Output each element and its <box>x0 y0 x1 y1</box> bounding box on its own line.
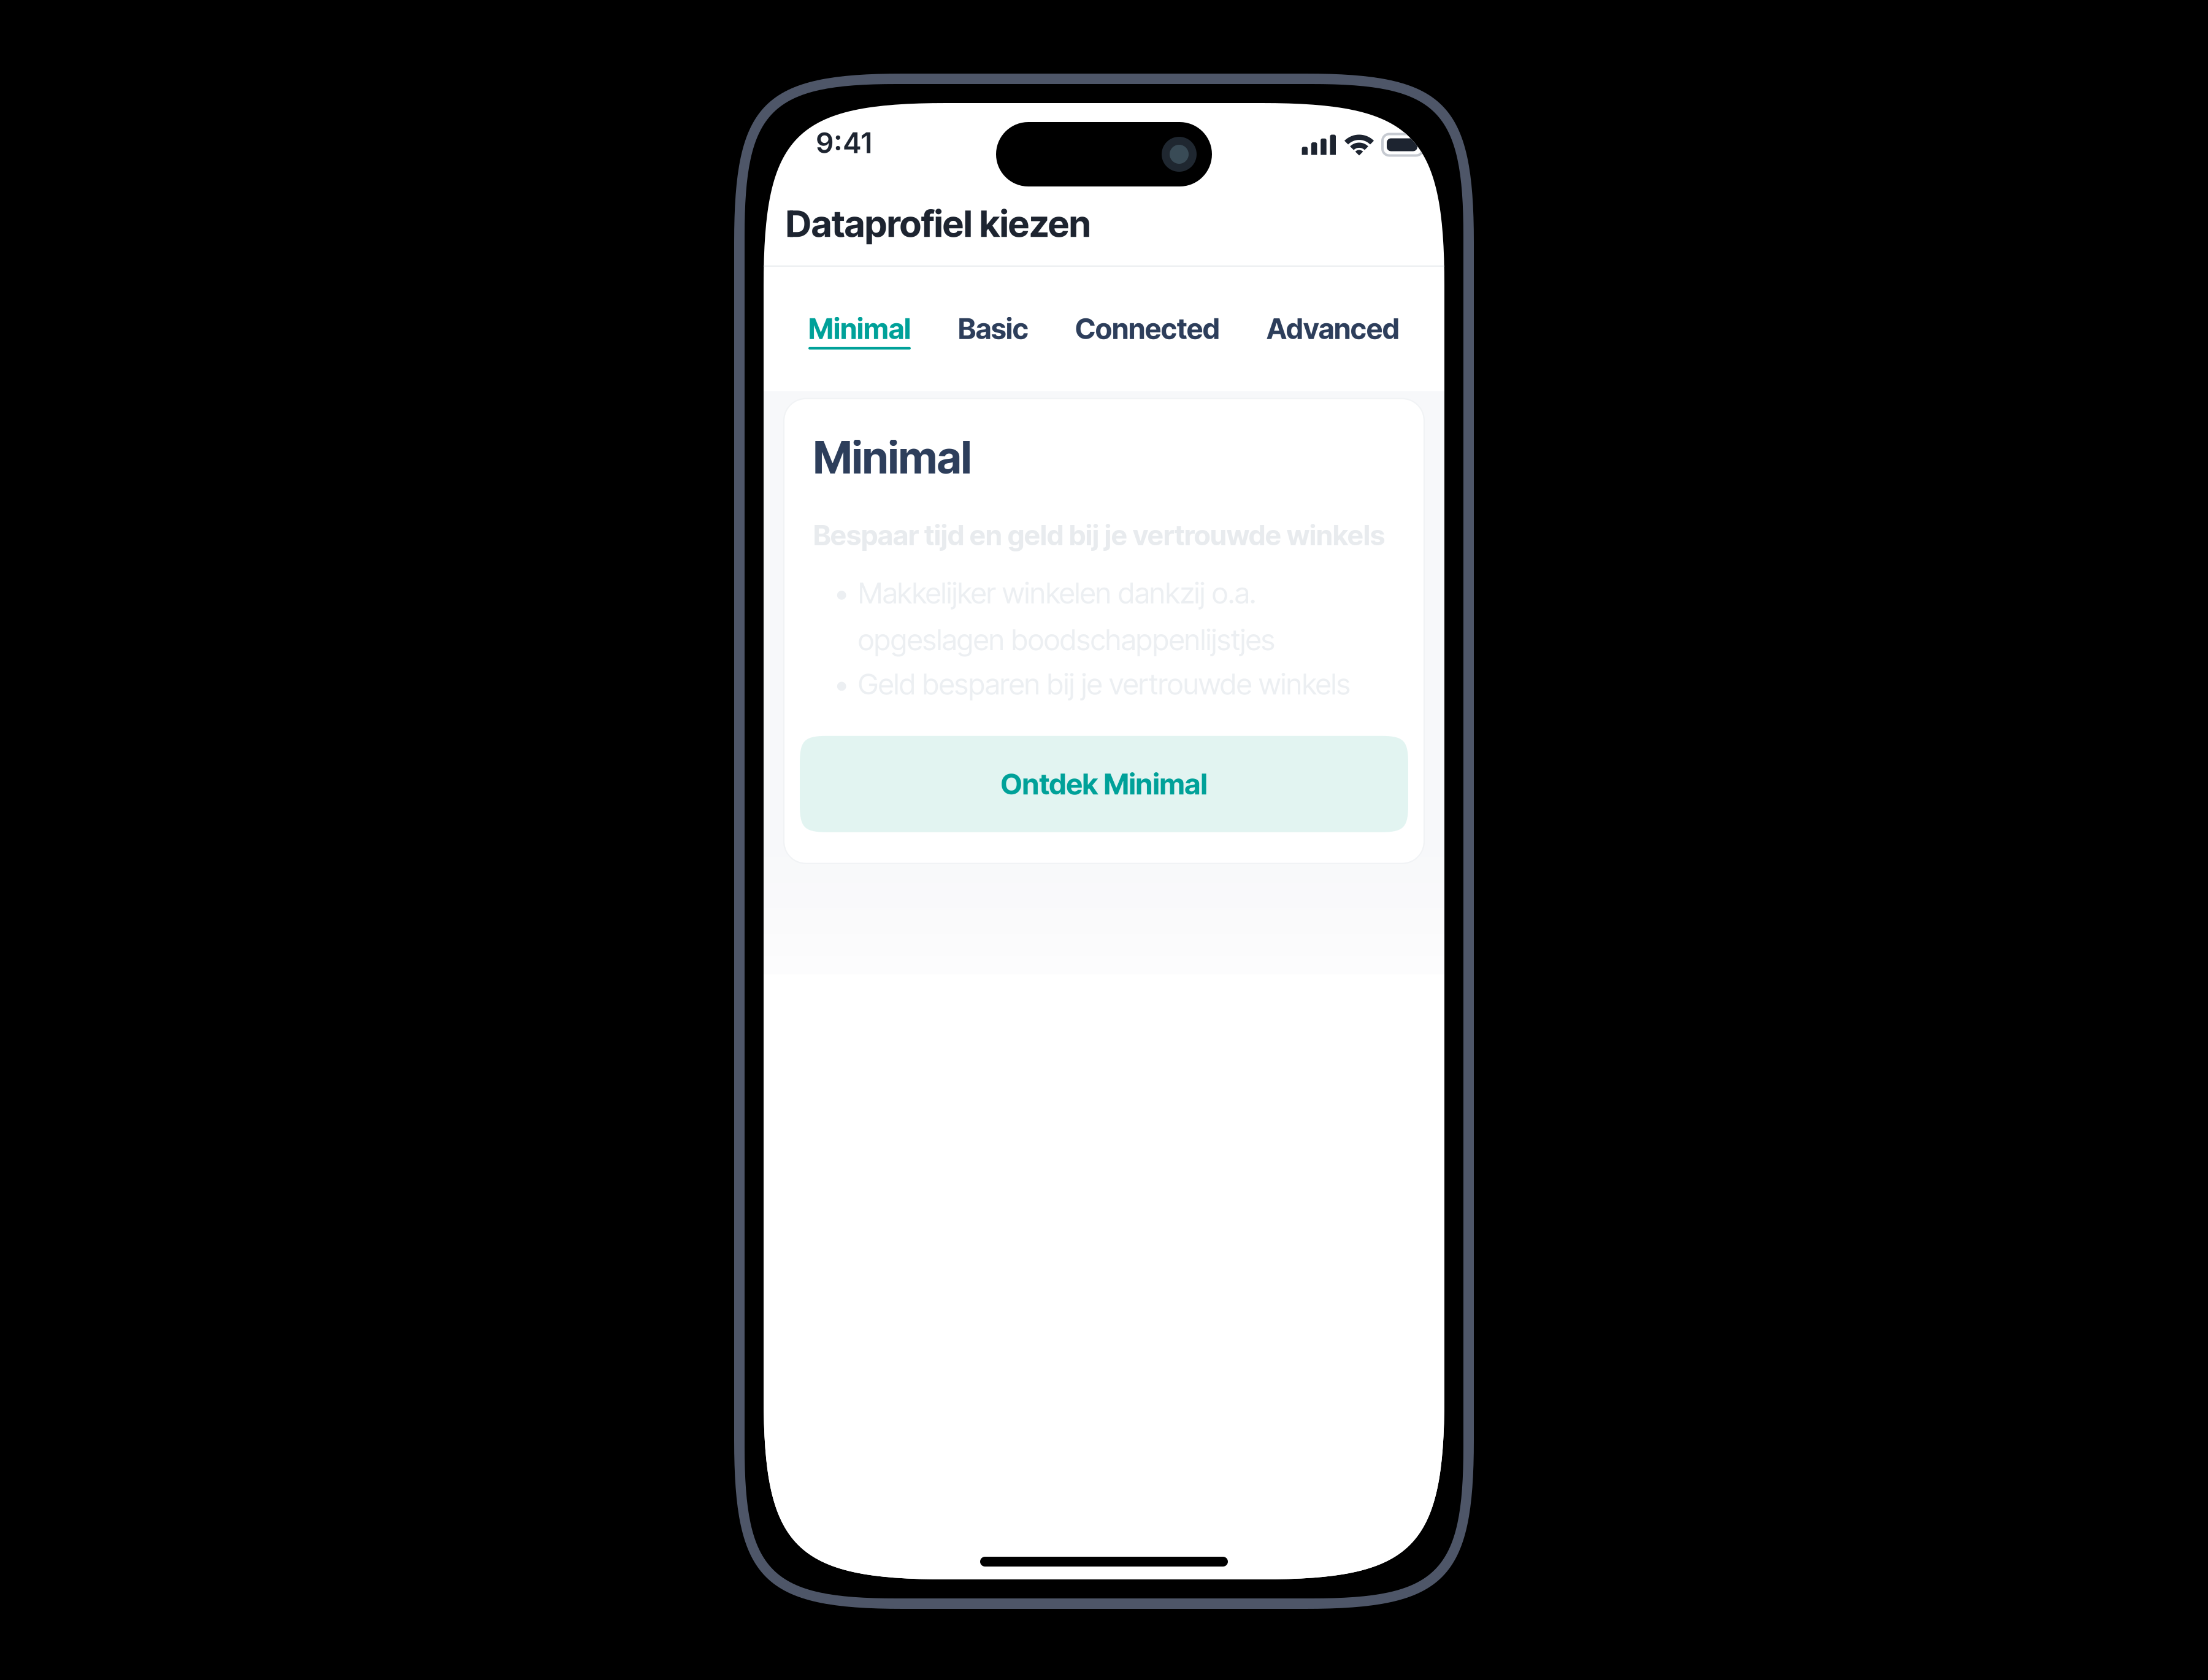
staticText: Geld besparen bij je vertrouwde winkels <box>858 666 1351 702</box>
button[interactable]: Connected <box>1075 312 1220 349</box>
staticText: Minimal <box>813 431 972 484</box>
staticText: Makkelijker winkelen dankzij o.a. opgesl… <box>858 575 1275 657</box>
staticText: Bespaar tijd en geld bij je vertrouwde w… <box>813 518 1385 552</box>
staticText: Dataprofiel kiezen <box>786 201 1091 246</box>
staticText: Basic <box>958 312 1029 346</box>
staticText: Advanced <box>1267 312 1400 346</box>
staticText: Ontdek Minimal <box>1001 767 1207 801</box>
staticText: • <box>834 575 848 610</box>
staticText: • <box>834 666 848 702</box>
button[interactable]: Basic <box>958 312 1029 349</box>
button[interactable]: Ontdek Minimal <box>800 736 1408 832</box>
button[interactable]: Advanced <box>1267 312 1400 349</box>
staticText: 9:41 <box>816 126 872 160</box>
staticText: Connected <box>1075 312 1220 346</box>
staticText: Minimal <box>808 312 911 346</box>
button[interactable]: Minimal <box>808 312 911 349</box>
